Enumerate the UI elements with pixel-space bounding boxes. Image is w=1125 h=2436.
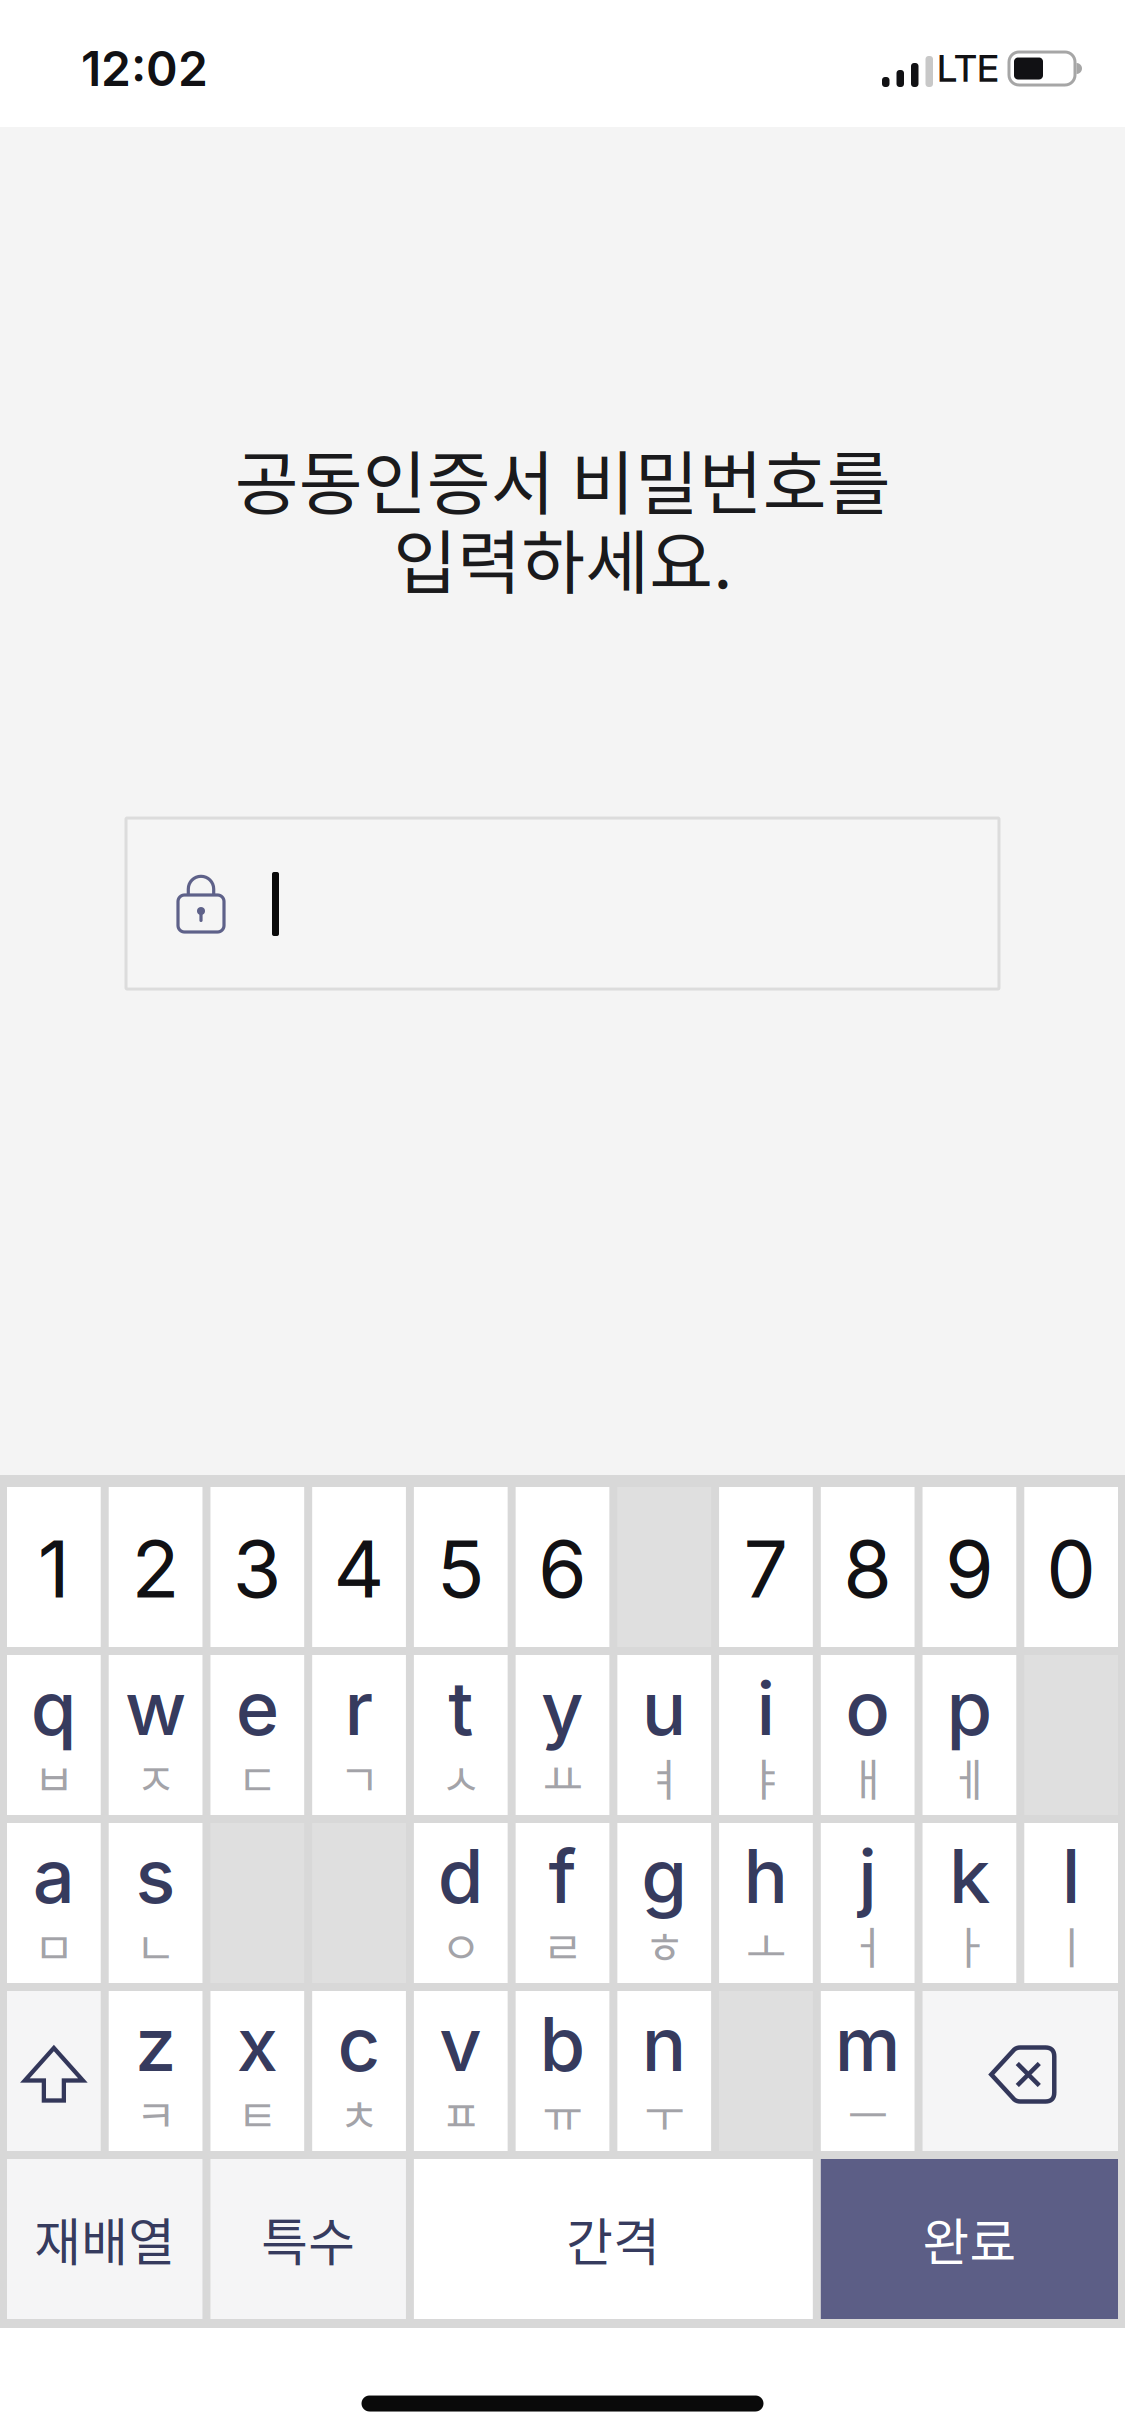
staticText: ㅏ [949, 1913, 989, 1977]
button[interactable]: l [1024, 1823, 1118, 1983]
button[interactable]: x [210, 1991, 304, 2151]
staticText: k [949, 1832, 990, 1920]
staticText: j [858, 1832, 877, 1920]
button[interactable]: 6 [516, 1487, 609, 1647]
button[interactable]: 완료 [821, 2159, 1118, 2319]
button[interactable]: 2 [109, 1487, 202, 1647]
staticText: a [33, 1832, 75, 1920]
staticText: g [641, 1832, 687, 1920]
staticText: w [125, 1664, 186, 1752]
staticText: ㅅ [441, 1745, 481, 1809]
staticText: 3 [233, 1523, 282, 1615]
staticText: u [642, 1664, 687, 1752]
staticText: ㅋ [136, 2081, 176, 2145]
staticText: z [135, 2000, 176, 2088]
button[interactable]: h [719, 1823, 813, 1983]
staticText: 1 [38, 1523, 70, 1615]
staticText: ㄱ [339, 1745, 379, 1809]
staticText: 6 [538, 1523, 587, 1615]
staticText: LTE [937, 47, 999, 90]
staticText: d [438, 1832, 484, 1920]
button[interactable]: c [312, 1991, 406, 2151]
button[interactable]: d [414, 1823, 508, 1983]
staticText: 특수 [261, 2202, 355, 2276]
staticText: ㅎ [644, 1913, 684, 1977]
staticText: ㅍ [441, 2081, 481, 2145]
button[interactable] [126, 818, 999, 989]
button[interactable]: 재배열 [7, 2159, 202, 2319]
staticText: ㅗ [746, 1913, 786, 1977]
button[interactable]: y [516, 1655, 609, 1815]
button[interactable]: w [109, 1655, 202, 1815]
button[interactable]: u [617, 1655, 711, 1815]
staticText: ㅔ [949, 1745, 989, 1809]
staticText: ㅠ [542, 2081, 582, 2145]
staticText: v [439, 2000, 482, 2088]
staticText: ㅓ [848, 1913, 888, 1977]
staticText: x [237, 2000, 278, 2088]
button[interactable]: 3 [210, 1487, 304, 1647]
staticText: ㅡ [848, 2081, 888, 2145]
staticText: 0 [1046, 1523, 1096, 1615]
staticText: ㄹ [542, 1913, 582, 1977]
staticText: 8 [843, 1523, 892, 1615]
staticText: 7 [743, 1523, 788, 1615]
staticText: h [743, 1832, 788, 1920]
button[interactable]: z [109, 1991, 202, 2151]
staticText: i [756, 1664, 775, 1752]
button[interactable]: f [516, 1823, 609, 1983]
button[interactable]: j [821, 1823, 914, 1983]
staticText: ㅈ [136, 1745, 176, 1809]
staticText: 4 [333, 1523, 384, 1615]
staticText: t [448, 1664, 473, 1752]
staticText: 완료 [922, 2202, 1016, 2276]
button[interactable]: 1 [7, 1487, 101, 1647]
button[interactable]: e [210, 1655, 304, 1815]
button[interactable]: a [7, 1823, 101, 1983]
button[interactable]: 8 [821, 1487, 914, 1647]
button[interactable] [7, 1991, 101, 2151]
button[interactable]: s [109, 1823, 202, 1983]
button[interactable]: 7 [719, 1487, 813, 1647]
button[interactable]: 0 [1024, 1487, 1118, 1647]
staticText: b [539, 2000, 585, 2088]
button[interactable]: k [922, 1823, 1016, 1983]
button[interactable]: g [617, 1823, 711, 1983]
button[interactable] [922, 1991, 1118, 2151]
button[interactable]: 특수 [210, 2159, 406, 2319]
button[interactable]: t [414, 1655, 508, 1815]
staticText: o [845, 1664, 890, 1752]
button[interactable]: q [7, 1655, 101, 1815]
button[interactable]: b [516, 1991, 609, 2151]
staticText: ㅌ [237, 2081, 277, 2145]
staticText: ㅊ [339, 2081, 379, 2145]
staticText: m [835, 2000, 901, 2088]
button[interactable]: o [821, 1655, 914, 1815]
button[interactable]: n [617, 1991, 711, 2151]
staticText: l [1062, 1832, 1081, 1920]
button[interactable]: 5 [414, 1487, 508, 1647]
staticText: 12:02 [81, 40, 208, 97]
staticText: 간격 [566, 2202, 660, 2276]
staticText: 공동인증서 비밀번호를 입력하세요. [234, 439, 890, 598]
button[interactable]: v [414, 1991, 508, 2151]
button[interactable]: 9 [922, 1487, 1016, 1647]
staticText: ㅕ [644, 1745, 684, 1809]
staticText: 9 [945, 1523, 994, 1615]
staticText: ㅑ [746, 1745, 786, 1809]
staticText: f [548, 1832, 576, 1920]
button[interactable]: i [719, 1655, 813, 1815]
staticText: p [946, 1664, 992, 1752]
staticText: 2 [132, 1523, 180, 1615]
staticText: ㅇ [441, 1913, 481, 1977]
staticText: 재배열 [34, 2202, 175, 2276]
staticText: n [642, 2000, 687, 2088]
button[interactable]: r [312, 1655, 406, 1815]
button[interactable]: p [922, 1655, 1016, 1815]
button[interactable]: 4 [312, 1487, 406, 1647]
staticText: ㅂ [34, 1745, 74, 1809]
button[interactable]: 간격 [414, 2159, 813, 2319]
staticText: q [31, 1664, 77, 1752]
button[interactable]: m [821, 1991, 914, 2151]
staticText: ㅛ [542, 1745, 582, 1809]
